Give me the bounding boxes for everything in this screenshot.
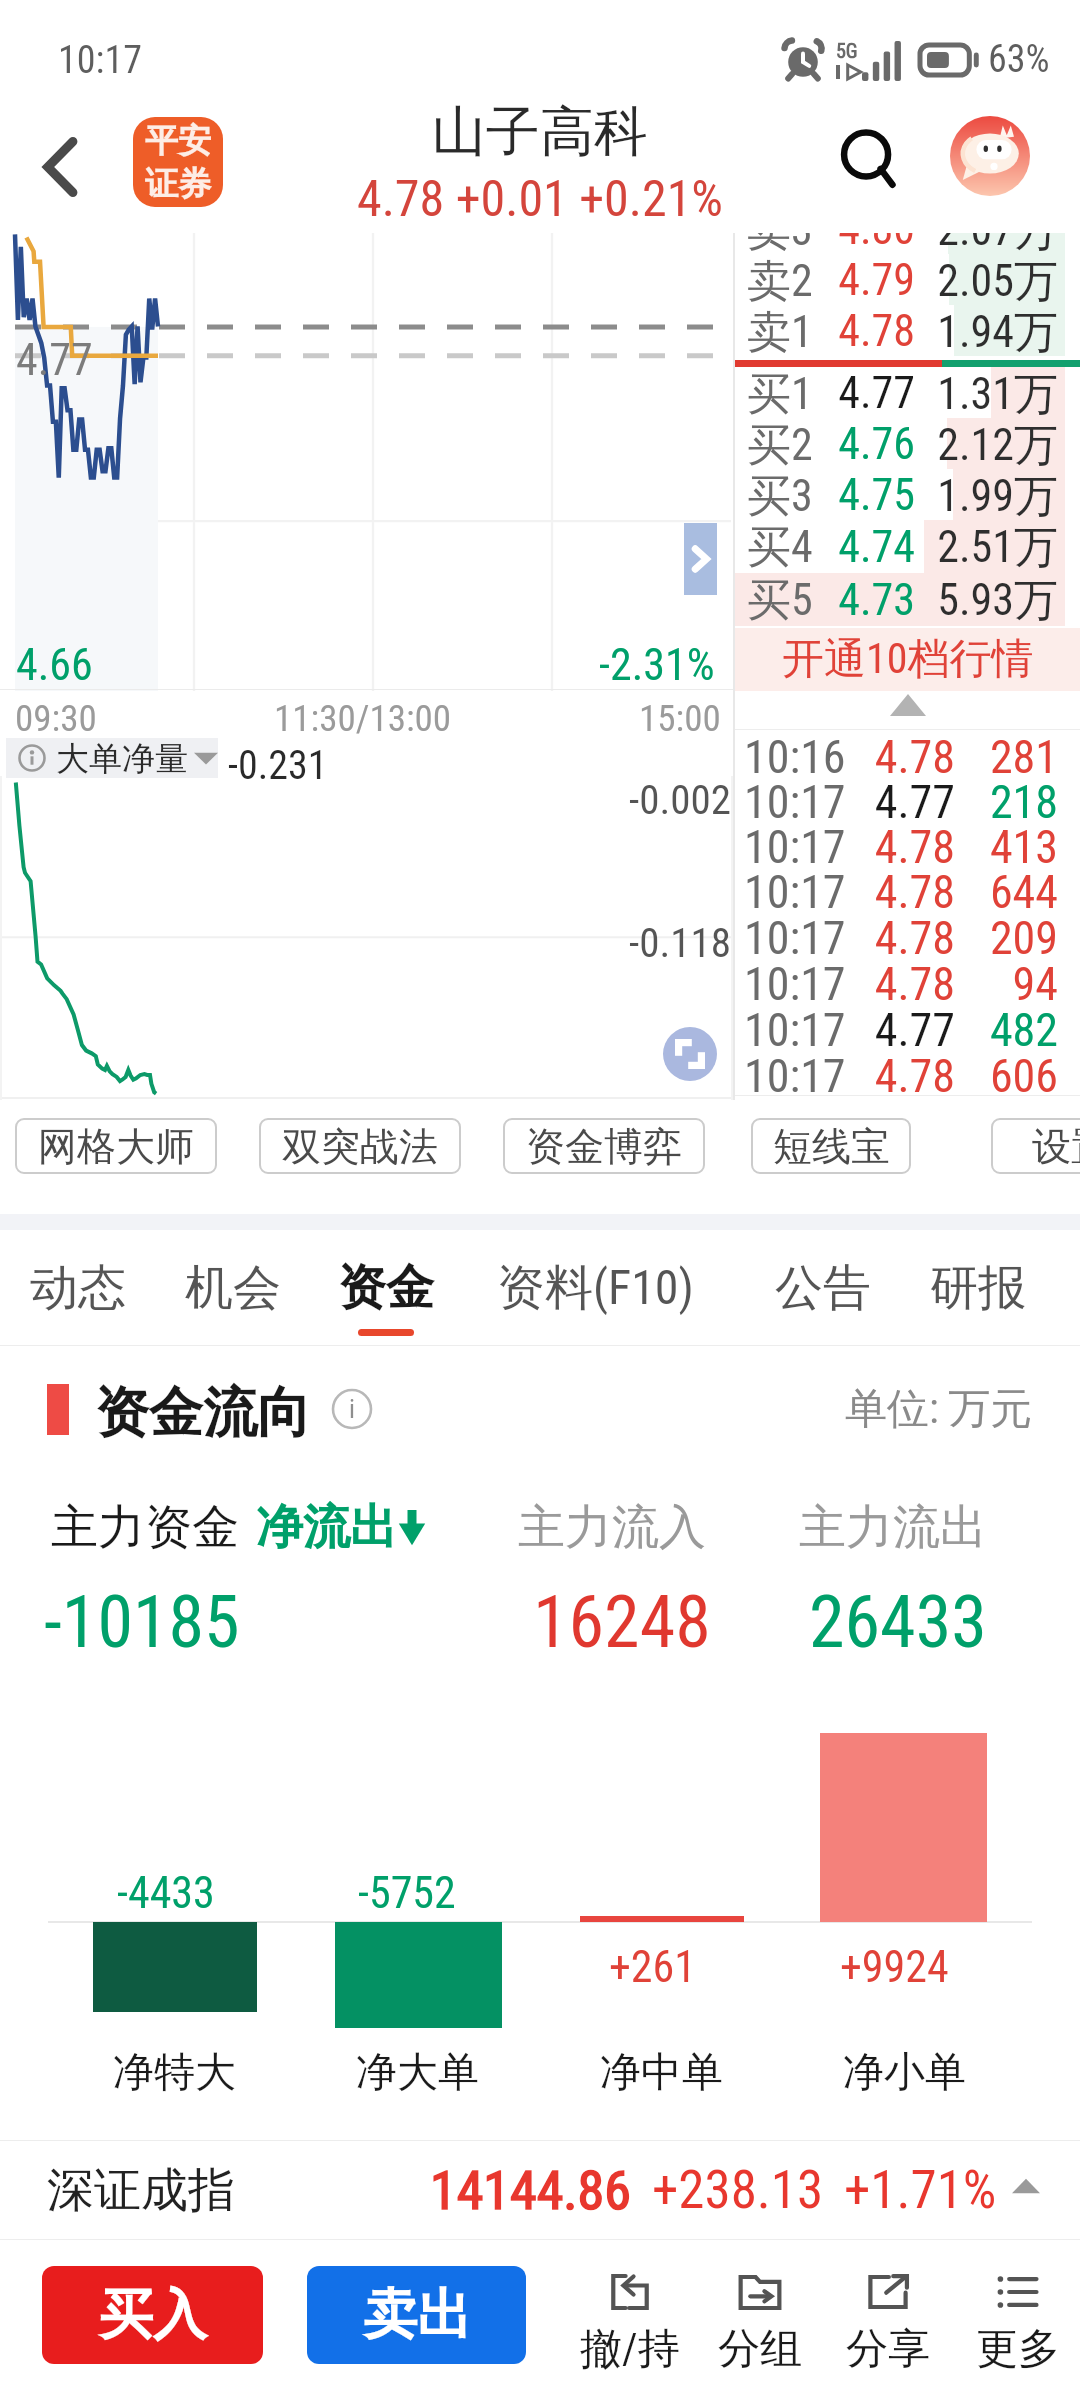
staticText: 买4 <box>747 520 813 573</box>
button[interactable]: 10:17 <box>735 911 1080 957</box>
staticText: 218 <box>989 775 1058 820</box>
staticText: 双突战法 <box>282 1122 438 1171</box>
staticText: 15:00 <box>639 697 721 740</box>
staticText: -5752 <box>358 1867 456 1919</box>
staticText: 卖3 <box>747 233 813 254</box>
button[interactable]: 研报 <box>930 1230 1026 1346</box>
staticText: 买1 <box>747 367 813 418</box>
staticText: 413 <box>989 820 1058 865</box>
button[interactable]: 设置 <box>991 1118 1080 1174</box>
staticText: 5G <box>836 39 858 62</box>
staticText: 4.80 <box>838 233 915 254</box>
staticText: 10:16 <box>744 730 846 775</box>
button[interactable]: 卖3 <box>735 233 1080 254</box>
button[interactable]: 网格大师 <box>15 1118 217 1174</box>
staticText: 净流出 <box>256 1498 397 1554</box>
staticText: 10:17 <box>744 911 846 957</box>
button[interactable]: 买1 <box>735 367 1080 418</box>
staticText: 2.05万 <box>937 254 1058 305</box>
button[interactable]: 10:17 <box>735 957 1080 1003</box>
button[interactable]: 开通10档行情 <box>735 628 1080 691</box>
staticText: 94 <box>1012 957 1058 1003</box>
staticText: 净中单 <box>600 2047 723 2099</box>
button[interactable]: 买入 <box>42 2266 263 2364</box>
staticText: 4.74 <box>838 521 915 573</box>
staticText: 净特大 <box>113 2047 236 2099</box>
staticText: 10:17 <box>58 38 142 83</box>
button[interactable]: 大单净量 <box>6 738 218 778</box>
button[interactable]: 10:17 <box>735 1049 1080 1095</box>
button[interactable]: 短线宝 <box>751 1118 911 1174</box>
staticText: 买5 <box>747 573 813 626</box>
button[interactable]: 双突战法 <box>259 1118 461 1174</box>
staticText: 资料(F10) <box>497 1258 694 1318</box>
button[interactable]: 10:17 <box>735 820 1080 865</box>
staticText: 09:30 <box>15 697 97 740</box>
staticText: 网格大师 <box>38 1122 194 1171</box>
staticText: 买3 <box>747 469 813 520</box>
staticText: 资金 <box>338 1258 434 1318</box>
button[interactable]: Ping An Securities <box>133 117 223 207</box>
staticText: +9924 <box>840 1941 949 1993</box>
button[interactable]: Fullscreen <box>663 1027 717 1081</box>
staticText: 2.51万 <box>937 520 1058 573</box>
button[interactable]: 动态 <box>30 1230 126 1346</box>
staticText: 卖2 <box>747 254 813 305</box>
button[interactable]: 10:17 <box>735 775 1080 820</box>
button[interactable]: 卖2 <box>735 254 1080 305</box>
staticText: 研报 <box>930 1258 1026 1318</box>
staticText: 撤/持 <box>580 2323 680 2376</box>
button[interactable]: 买2 <box>735 418 1080 469</box>
button[interactable]: 资金 <box>338 1230 434 1346</box>
staticText: -0.231 <box>228 742 328 789</box>
staticText: 短线宝 <box>773 1122 890 1171</box>
staticText: -0.118 <box>629 919 731 967</box>
button[interactable]: 机会 <box>185 1230 281 1346</box>
button[interactable]: 公告 <box>775 1230 871 1346</box>
button[interactable]: 10:17 <box>735 865 1080 911</box>
button[interactable]: 撤/持 <box>568 2262 692 2374</box>
staticText: +238.13 <box>652 2159 824 2221</box>
button[interactable]: 买5 <box>735 573 1080 626</box>
button[interactable]: 10:16 <box>735 730 1080 775</box>
staticText: 4.77 <box>16 334 93 386</box>
staticText: 平安 <box>145 120 211 162</box>
button[interactable]: 卖出 <box>307 2266 526 2364</box>
staticText: -2.31% <box>599 639 715 691</box>
button[interactable]: Search <box>824 111 924 211</box>
staticText: 2.12万 <box>937 418 1058 469</box>
staticText: 山子高科 <box>432 98 648 166</box>
staticText: 开通10档行情 <box>782 633 1034 686</box>
button[interactable]: Back <box>0 107 120 227</box>
button[interactable]: 买4 <box>735 520 1080 573</box>
button[interactable]: 10:17 <box>735 1003 1080 1049</box>
button[interactable]: 资金博弈 <box>503 1118 705 1174</box>
staticText: 4.77 <box>874 775 955 820</box>
staticText: 10:17 <box>744 865 846 911</box>
button[interactable]: 更多 <box>956 2262 1080 2374</box>
staticText: 5.93万 <box>937 573 1058 626</box>
staticText: 4.78 <box>874 1049 955 1095</box>
staticText: 482 <box>989 1003 1058 1049</box>
staticText: 分组 <box>718 2323 802 2376</box>
button[interactable]: Customer service <box>950 116 1030 196</box>
staticText: i <box>349 1394 355 1424</box>
button[interactable]: Expand quote <box>684 523 717 595</box>
button[interactable]: 分组 <box>698 2262 822 2374</box>
staticText: -10185 <box>44 1580 240 1652</box>
staticText: 4.77 <box>874 1003 955 1049</box>
button[interactable]: 深证成指 <box>0 2140 1080 2240</box>
staticText: 卖1 <box>747 305 813 356</box>
button[interactable]: 资料(F10) <box>497 1230 694 1346</box>
button[interactable]: 卖1 <box>735 305 1080 356</box>
button[interactable]: 买3 <box>735 469 1080 520</box>
staticText: 4.75 <box>838 469 915 520</box>
staticText: 26433 <box>809 1580 987 1652</box>
staticText: 63% <box>988 37 1050 82</box>
staticText: 机会 <box>185 1258 281 1318</box>
button[interactable]: 分享 <box>826 2262 950 2374</box>
staticText: 买入 <box>99 2281 207 2349</box>
staticText: 1.99万 <box>937 469 1058 520</box>
staticText: 资金流向 <box>95 1379 311 1439</box>
staticText: 4.78 <box>874 865 955 911</box>
